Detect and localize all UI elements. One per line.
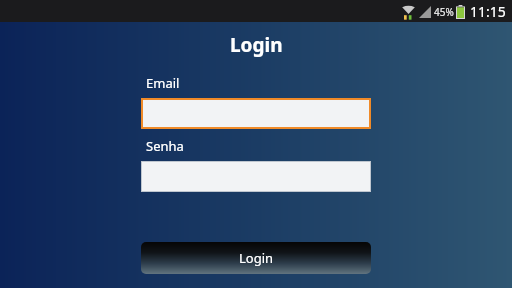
staticText: Email — [146, 74, 180, 92]
staticText: 45% — [434, 5, 454, 19]
staticText: Login — [239, 249, 274, 267]
other: Signal strength — [419, 6, 431, 18]
button[interactable]: Login — [141, 242, 371, 274]
other: Wi-Fi — [401, 4, 416, 20]
staticText: Senha — [146, 137, 184, 155]
staticText: 11:15 — [470, 2, 506, 21]
staticText: Login — [230, 32, 283, 58]
other: Battery 45 percent — [456, 5, 465, 19]
